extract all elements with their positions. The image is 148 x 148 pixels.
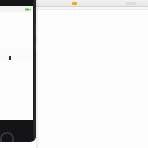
button[interactable]: Home xyxy=(0,132,14,142)
button[interactable] xyxy=(0,12,33,120)
button[interactable]: Run xyxy=(72,2,77,5)
button[interactable]: Phone device preview xyxy=(0,0,36,142)
